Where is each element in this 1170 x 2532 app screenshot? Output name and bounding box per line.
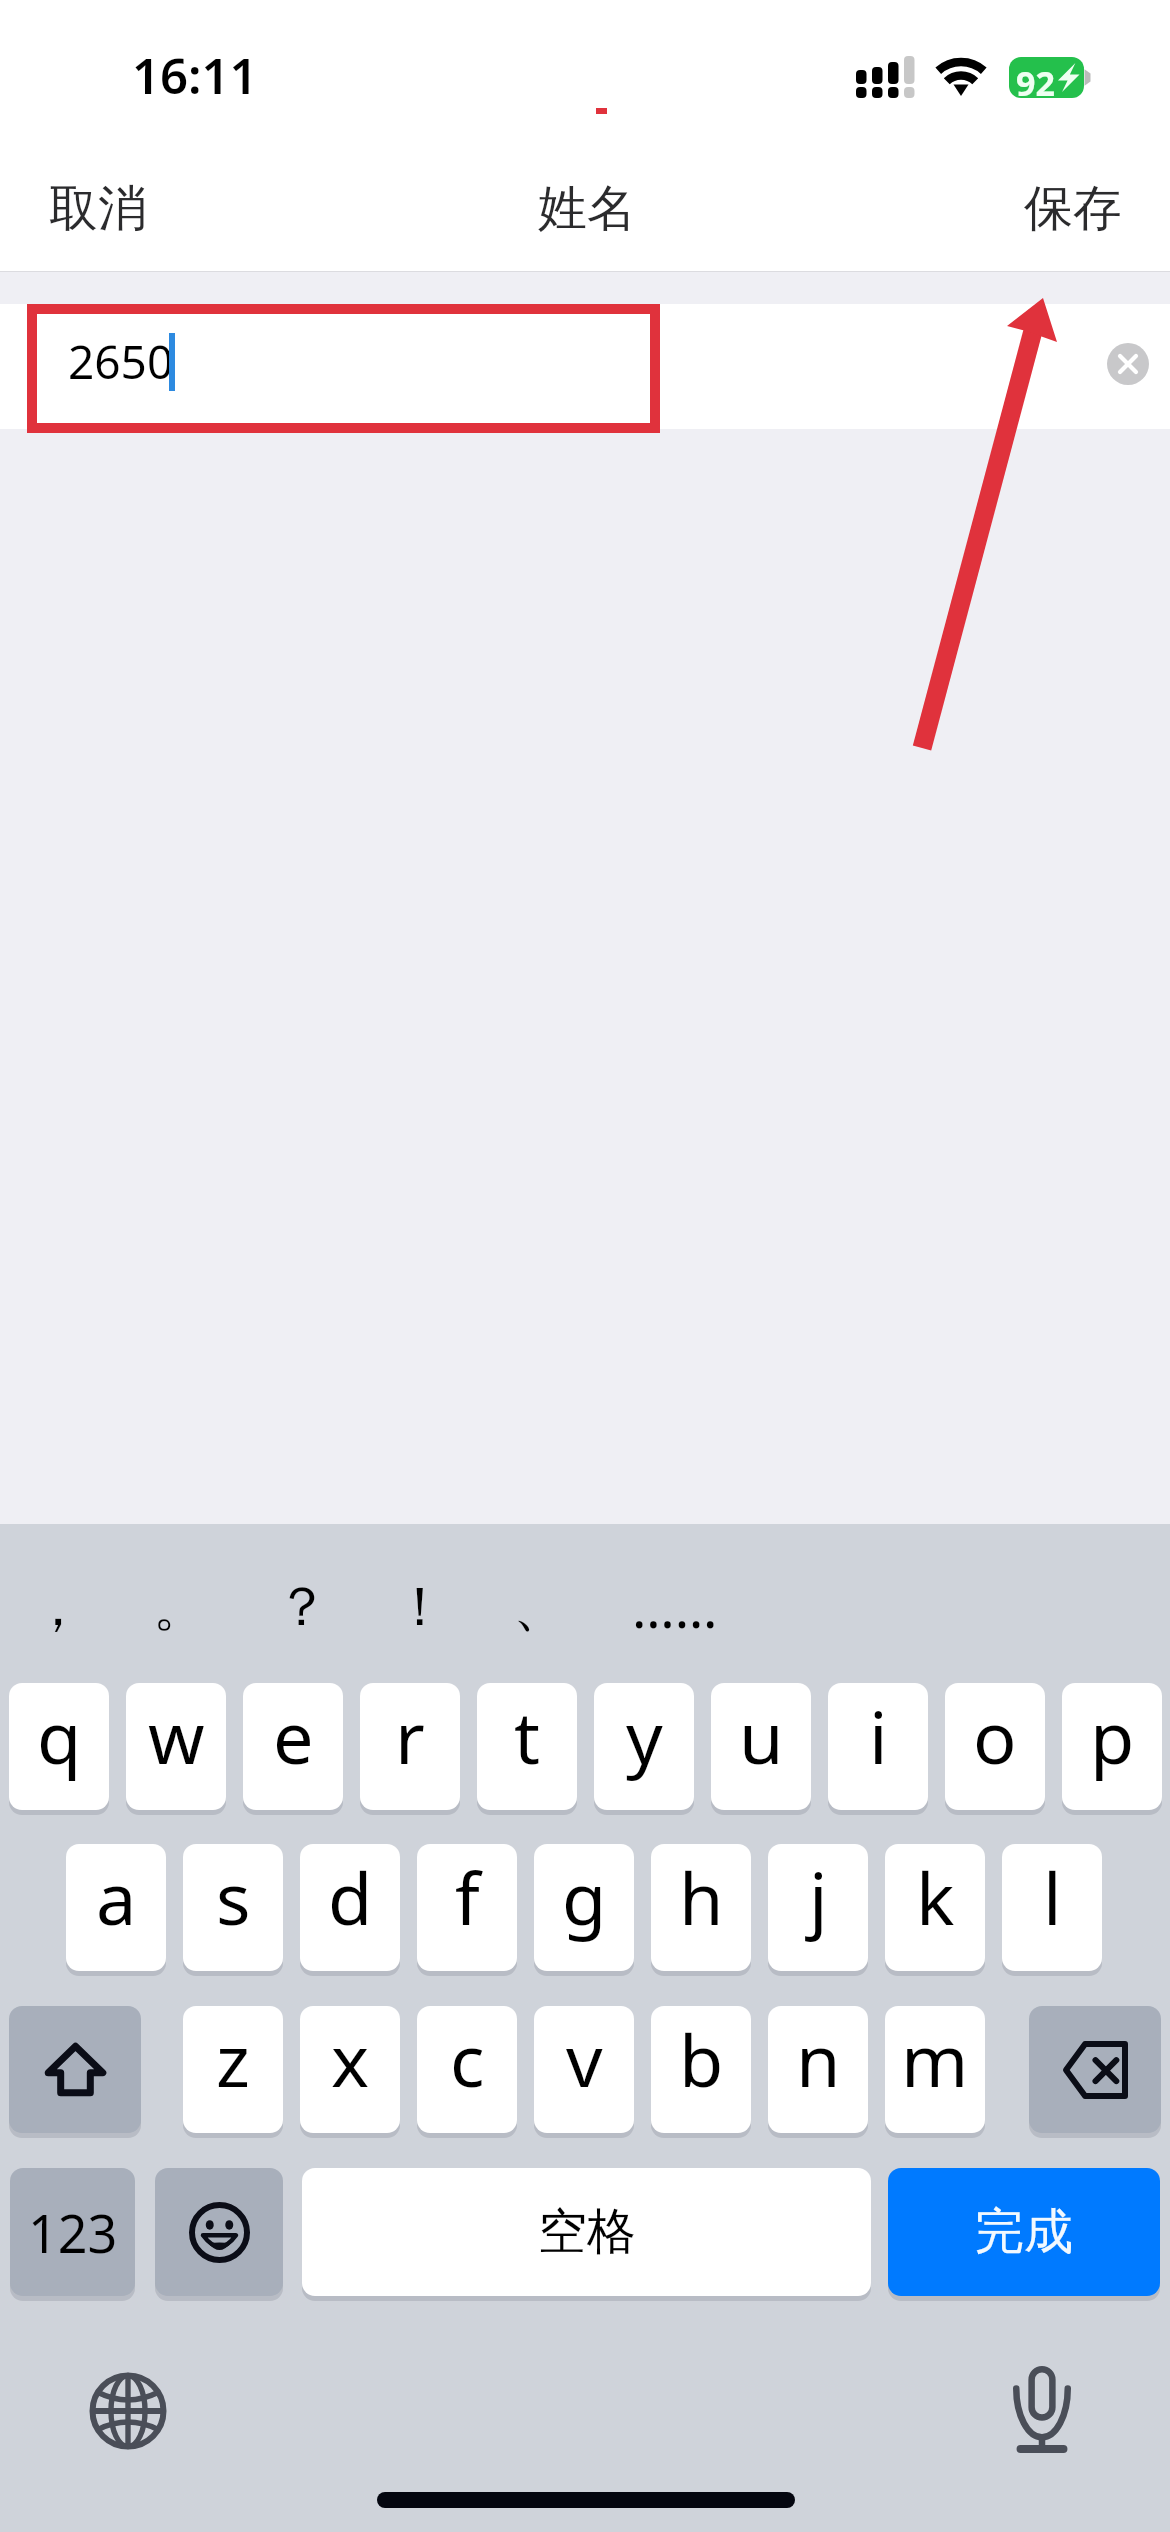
staticText: 。	[153, 1573, 207, 1641]
staticText: 姓名	[538, 178, 636, 240]
button[interactable]: u	[711, 1683, 811, 1810]
button[interactable]: w	[126, 1683, 226, 1810]
button[interactable]: f	[417, 1844, 517, 1971]
staticText: 2650	[68, 330, 174, 393]
button[interactable]: b	[651, 2006, 751, 2133]
button[interactable]: Shift	[9, 2006, 141, 2133]
button[interactable]: q	[9, 1683, 109, 1810]
staticText: m	[901, 2010, 969, 2108]
staticText: q	[37, 1687, 82, 1785]
button[interactable]: Name text field	[0, 304, 1170, 429]
staticText: o	[973, 1687, 1017, 1785]
staticText: n	[796, 2010, 841, 2108]
staticText: 保存	[1024, 178, 1122, 240]
button[interactable]: 空格	[302, 2168, 871, 2296]
button[interactable]: y	[594, 1683, 694, 1810]
staticText: j	[809, 1848, 828, 1946]
staticText: t	[514, 1687, 540, 1785]
button[interactable]: 保存	[994, 156, 1170, 262]
staticText: v	[566, 2010, 603, 2108]
button[interactable]: z	[183, 2006, 283, 2133]
staticText: 、	[513, 1573, 567, 1641]
button[interactable]: Backspace	[1029, 2006, 1161, 2133]
staticText: k	[916, 1848, 955, 1946]
staticText: r	[395, 1687, 425, 1785]
button[interactable]: ……	[615, 1562, 735, 1652]
button[interactable]: Clear text	[1107, 343, 1149, 385]
button[interactable]: 取消	[0, 156, 177, 262]
button[interactable]: o	[945, 1683, 1045, 1810]
staticText: ！	[393, 1573, 447, 1641]
staticText: l	[1043, 1848, 1062, 1946]
button[interactable]: p	[1062, 1683, 1162, 1810]
button[interactable]: 。	[120, 1562, 240, 1652]
button[interactable]: j	[768, 1844, 868, 1971]
staticText: g	[562, 1848, 607, 1946]
staticText: h	[679, 1848, 724, 1946]
button[interactable]: d	[300, 1844, 400, 1971]
staticText: 取消	[49, 178, 147, 240]
button[interactable]: v	[534, 2006, 634, 2133]
button[interactable]: ，	[0, 1562, 118, 1652]
staticText: ？	[275, 1573, 329, 1641]
button[interactable]: m	[885, 2006, 985, 2133]
button[interactable]: 完成	[888, 2168, 1160, 2296]
button[interactable]: n	[768, 2006, 868, 2133]
button[interactable]: x	[300, 2006, 400, 2133]
staticText: e	[273, 1687, 314, 1785]
button[interactable]: 、	[480, 1562, 600, 1652]
staticText: 92	[1016, 60, 1055, 101]
button[interactable]: a	[66, 1844, 166, 1971]
button[interactable]: g	[534, 1844, 634, 1971]
button[interactable]: h	[651, 1844, 751, 1971]
button[interactable]: r	[360, 1683, 460, 1810]
staticText: ，	[31, 1573, 85, 1641]
button[interactable]: i	[828, 1683, 928, 1810]
staticText: a	[96, 1848, 137, 1946]
staticText: f	[455, 1848, 480, 1946]
button[interactable]: l	[1002, 1844, 1102, 1971]
staticText: w	[148, 1687, 205, 1785]
staticText: p	[1090, 1687, 1135, 1785]
staticText: i	[869, 1687, 888, 1785]
button[interactable]: c	[417, 2006, 517, 2133]
staticText: b	[679, 2010, 724, 2108]
button[interactable]: Dictation	[983, 2350, 1101, 2468]
staticText: 123	[28, 2197, 118, 2268]
staticText: 16:11	[132, 42, 258, 109]
staticText: 空格	[538, 2201, 636, 2263]
button[interactable]: t	[477, 1683, 577, 1810]
staticText: x	[331, 2010, 370, 2108]
staticText: c	[450, 2010, 485, 2108]
button[interactable]: Switch keyboard	[69, 2352, 187, 2470]
button[interactable]: ！	[360, 1562, 480, 1652]
button[interactable]: 123	[10, 2168, 135, 2296]
staticText: d	[328, 1848, 373, 1946]
button[interactable]: s	[183, 1844, 283, 1971]
staticText: z	[216, 2010, 250, 2108]
button[interactable]: Emoji	[155, 2168, 283, 2296]
staticText: 完成	[975, 2201, 1073, 2263]
staticText: u	[739, 1687, 784, 1785]
button[interactable]: ？	[242, 1562, 362, 1652]
button[interactable]: e	[243, 1683, 343, 1810]
staticText: y	[626, 1687, 663, 1785]
staticText: ……	[632, 1570, 718, 1644]
button[interactable]: k	[885, 1844, 985, 1971]
staticText: s	[216, 1848, 251, 1946]
